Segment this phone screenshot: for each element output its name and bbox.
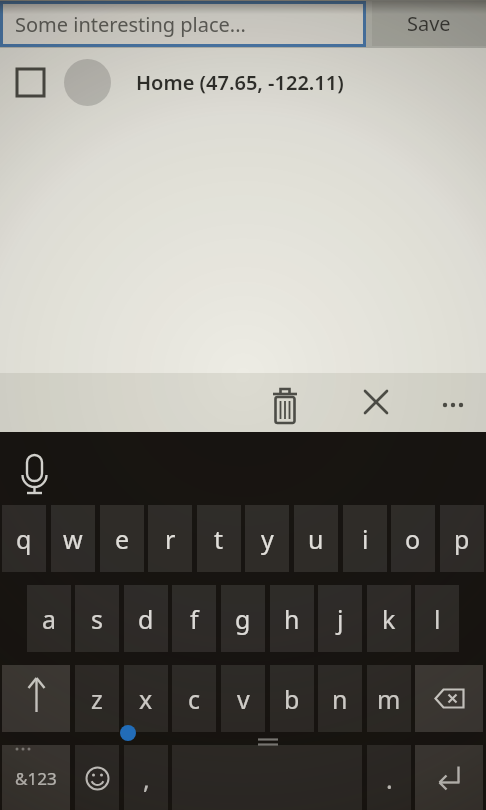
button[interactable] [75, 745, 119, 810]
staticText: p [454, 522, 470, 556]
staticText: d [138, 602, 154, 636]
button[interactable]: m [367, 665, 411, 732]
button[interactable]: j [318, 585, 362, 652]
staticText: x [139, 682, 153, 716]
staticText: , [143, 762, 150, 796]
staticText: f [190, 602, 199, 636]
staticText: &123 [15, 767, 57, 790]
staticText: z [91, 682, 103, 716]
staticText: j [337, 602, 344, 636]
button[interactable]: q [2, 505, 46, 572]
staticText: k [382, 602, 396, 636]
button[interactable]: Some interesting place... [3, 4, 363, 44]
staticText: g [235, 602, 251, 636]
staticText: b [284, 682, 300, 716]
button[interactable]: &123 [2, 745, 70, 810]
staticText: h [284, 602, 300, 636]
button[interactable]: d [124, 585, 168, 652]
button[interactable]: z [75, 665, 119, 732]
button[interactable]: e [100, 505, 144, 572]
button[interactable]: l [415, 585, 459, 652]
button[interactable]: Home (47.65, -122.11) [0, 51, 486, 113]
staticText: w [63, 522, 83, 556]
button[interactable]: f [172, 585, 216, 652]
staticText: v [237, 682, 250, 716]
staticText: o [405, 522, 421, 556]
button[interactable] [415, 665, 483, 732]
button[interactable] [415, 745, 483, 810]
button[interactable] [354, 380, 398, 424]
button[interactable] [431, 380, 475, 424]
button[interactable]: r [148, 505, 192, 572]
staticText: Some interesting place... [15, 11, 246, 38]
button[interactable]: g [221, 585, 265, 652]
button[interactable] [263, 380, 307, 424]
button[interactable]: v [221, 665, 265, 732]
button[interactable]: x [124, 665, 168, 732]
staticText: Home (47.65, -122.11) [136, 69, 344, 96]
button[interactable]: s [75, 585, 119, 652]
button[interactable]: w [51, 505, 95, 572]
button[interactable]: h [270, 585, 314, 652]
button[interactable] [2, 665, 70, 732]
button[interactable]: u [294, 505, 338, 572]
button[interactable]: b [270, 665, 314, 732]
staticText: s [91, 602, 103, 636]
button[interactable]: t [197, 505, 241, 572]
button[interactable]: , [124, 745, 168, 810]
button[interactable]: a [27, 585, 71, 652]
button[interactable]: i [343, 505, 387, 572]
button[interactable]: n [318, 665, 362, 732]
staticText: m [377, 682, 401, 716]
staticText: q [16, 522, 32, 556]
staticText: c [188, 682, 201, 716]
button[interactable] [12, 443, 56, 487]
staticText: i [362, 522, 369, 556]
staticText: u [308, 522, 324, 556]
button[interactable]: k [367, 585, 411, 652]
staticText: Save [407, 10, 451, 37]
staticText: n [332, 682, 348, 716]
button[interactable]: o [391, 505, 435, 572]
staticText: t [214, 522, 224, 556]
button[interactable]: y [245, 505, 289, 572]
staticText: r [165, 522, 176, 556]
staticText: a [42, 602, 57, 636]
staticText: l [434, 602, 441, 636]
button[interactable]: Save [372, 1, 486, 46]
button[interactable]: p [440, 505, 484, 572]
staticText: e [115, 522, 130, 556]
staticText: y [261, 522, 274, 556]
staticText: . [386, 762, 393, 796]
button[interactable]: c [172, 665, 216, 732]
button[interactable]: . [367, 745, 411, 810]
